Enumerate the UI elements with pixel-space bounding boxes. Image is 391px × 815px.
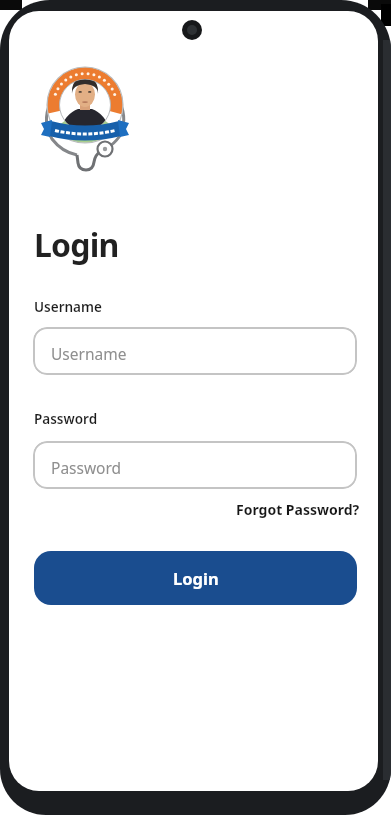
staticText: Login (173, 567, 219, 589)
staticText: Username (34, 298, 102, 316)
button[interactable]: Login (34, 551, 357, 605)
button[interactable]: Username (33, 327, 357, 375)
staticText: Password (34, 410, 98, 428)
staticText: Login (34, 223, 119, 267)
staticText: Forgot Password? (236, 500, 360, 519)
staticText: Username (51, 343, 127, 364)
staticText: Password (51, 457, 122, 478)
button[interactable]: Forgot Password? (192, 498, 360, 520)
button[interactable]: Password (33, 441, 357, 489)
